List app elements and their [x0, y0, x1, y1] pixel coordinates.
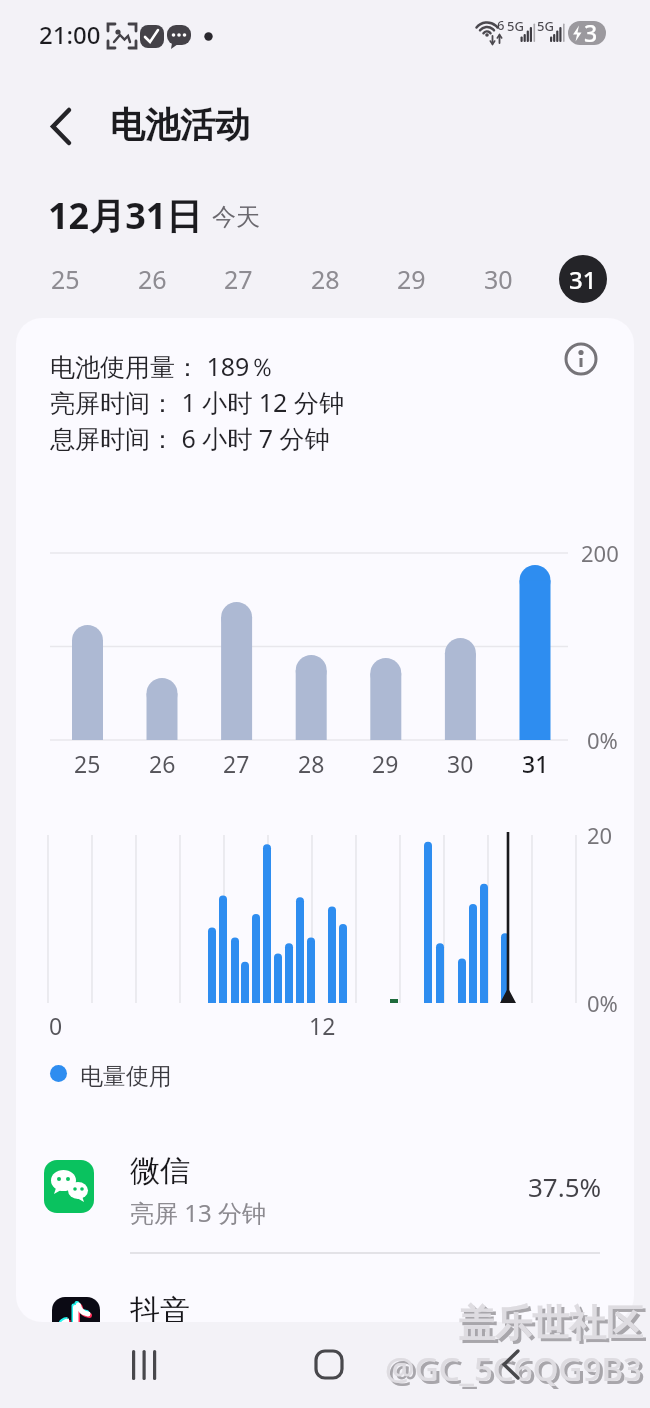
staticText: 31: [522, 748, 549, 779]
staticText: 12月31日: [48, 191, 203, 240]
staticText: 盖乐世社区: [458, 1300, 643, 1347]
staticText: @GC_5C6QG9B3: [388, 1349, 645, 1394]
button[interactable]: [285, 1335, 375, 1405]
staticText: 5G: [537, 17, 554, 35]
staticText: 29: [372, 748, 399, 779]
staticText: 200: [581, 538, 619, 568]
staticText: 今天: [212, 202, 260, 232]
staticText: 电池活动: [110, 103, 250, 147]
button[interactable]: 28: [295, 255, 355, 303]
staticText: 37.5%: [528, 1169, 602, 1204]
button[interactable]: 31: [559, 255, 607, 303]
staticText: 26: [138, 262, 167, 296]
staticText: 5G: [507, 17, 524, 35]
staticText: 31: [569, 263, 597, 296]
button[interactable]: [100, 1335, 190, 1405]
staticText: 28: [311, 262, 340, 296]
staticText: 27: [223, 748, 250, 779]
button[interactable]: 微信: [16, 1148, 634, 1248]
staticText: 0%: [587, 725, 618, 755]
staticText: 27: [224, 262, 253, 296]
button[interactable]: 抖音: [16, 1278, 634, 1322]
staticText: 12: [309, 1010, 336, 1041]
staticText: 抖音: [130, 1292, 190, 1322]
button[interactable]: 30: [468, 255, 528, 303]
staticText: 30: [447, 748, 474, 779]
staticText: 21:00: [39, 18, 101, 51]
staticText: 微信: [130, 1152, 190, 1190]
button[interactable]: 29: [381, 255, 441, 303]
staticText: 3: [584, 17, 598, 48]
staticText: 亮屏时间： 1 小时 12 分钟: [50, 385, 344, 419]
staticText: 28: [298, 748, 325, 779]
staticText: 26: [149, 748, 176, 779]
staticText: 20: [587, 820, 613, 850]
staticText: 25: [51, 262, 80, 296]
button[interactable]: [470, 1335, 560, 1405]
staticText: 电量使用: [80, 1062, 172, 1091]
staticText: 电池使用量： 189％: [50, 349, 275, 383]
staticText: @GC_5C6QG9B3: [385, 1346, 642, 1391]
staticText: 29: [397, 262, 426, 296]
staticText: 25: [74, 748, 101, 779]
button[interactable]: [561, 338, 605, 382]
staticText: 0%: [587, 988, 618, 1018]
staticText: 亮屏 13 分钟: [130, 1196, 266, 1229]
staticText: 6: [497, 16, 505, 34]
button[interactable]: 26: [122, 255, 182, 303]
staticText: 0: [49, 1010, 63, 1041]
button[interactable]: [38, 100, 88, 150]
staticText: 息屏时间： 6 小时 7 分钟: [50, 421, 330, 455]
staticText: 30: [484, 262, 513, 296]
staticText: 盖乐世社区: [461, 1303, 646, 1350]
button[interactable]: 25: [35, 255, 95, 303]
button[interactable]: 27: [208, 255, 268, 303]
